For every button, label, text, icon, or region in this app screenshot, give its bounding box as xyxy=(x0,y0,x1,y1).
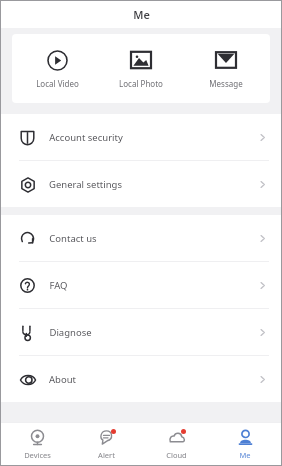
staticText: Account security xyxy=(49,131,123,144)
button[interactable]: About xyxy=(1,356,281,402)
other: Me xyxy=(238,430,253,445)
button[interactable]: Message xyxy=(186,45,266,93)
staticText: Local Video xyxy=(36,78,79,89)
staticText: FAQ xyxy=(49,279,68,292)
button[interactable]: General settings xyxy=(1,161,281,207)
button[interactable]: Cloud xyxy=(143,425,209,463)
staticText: Contact us xyxy=(49,232,97,245)
staticText: Me xyxy=(133,7,150,22)
staticText: Diagnose xyxy=(49,326,92,339)
staticText: Cloud xyxy=(166,450,187,460)
button[interactable]: Local Photo xyxy=(101,45,181,93)
button[interactable]: FAQ xyxy=(1,262,281,308)
other: Devices xyxy=(30,430,45,445)
staticText: About xyxy=(49,373,76,386)
button[interactable]: Diagnose xyxy=(1,309,281,355)
button[interactable]: Alert xyxy=(73,425,139,463)
staticText: Alert xyxy=(98,450,115,460)
button[interactable]: Local Video xyxy=(17,45,97,93)
other: Alert xyxy=(99,430,114,445)
other: Cloud xyxy=(169,430,185,446)
staticText: General settings xyxy=(49,178,122,191)
button[interactable]: Contact us xyxy=(1,215,281,261)
staticText: Me xyxy=(239,450,251,460)
button[interactable]: Account security xyxy=(1,114,281,160)
button[interactable]: Devices xyxy=(4,425,70,463)
staticText: Message xyxy=(209,78,243,89)
button[interactable]: Me xyxy=(212,425,278,463)
staticText: Devices xyxy=(24,450,51,460)
staticText: Local Photo xyxy=(119,78,163,89)
